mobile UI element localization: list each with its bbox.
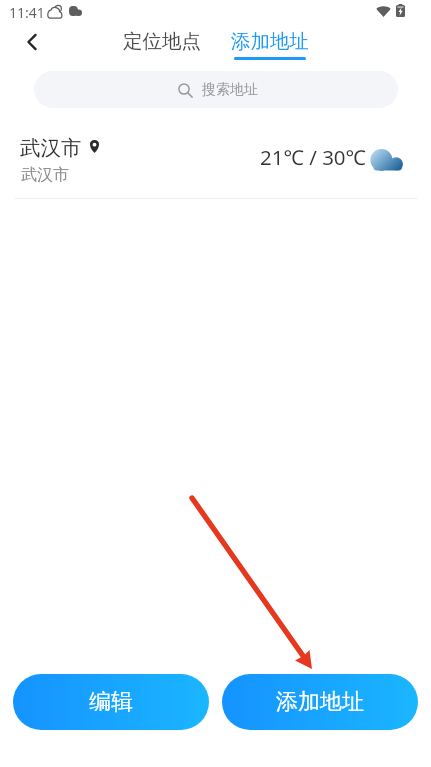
staticText: 11:41 — [9, 3, 45, 22]
staticText: 搜索地址 — [202, 81, 258, 99]
staticText: 编辑 — [89, 688, 133, 716]
button[interactable]: 搜索地址 — [34, 71, 398, 108]
button[interactable]: 添加地址 — [222, 674, 418, 730]
staticText: 定位地点 — [123, 29, 201, 54]
button[interactable]: Back — [13, 23, 51, 61]
button[interactable]: 定位地点 — [113, 25, 211, 69]
staticText: 添加地址 — [276, 688, 364, 716]
button[interactable]: 武汉市 — [0, 126, 431, 192]
staticText: 武汉市 — [21, 165, 69, 185]
staticText: 21℃ / 30℃ — [260, 143, 366, 171]
staticText: 武汉市 — [20, 135, 82, 161]
staticText: 添加地址 — [231, 29, 309, 54]
button[interactable]: 添加地址 — [223, 25, 317, 69]
button[interactable]: 编辑 — [13, 674, 209, 730]
